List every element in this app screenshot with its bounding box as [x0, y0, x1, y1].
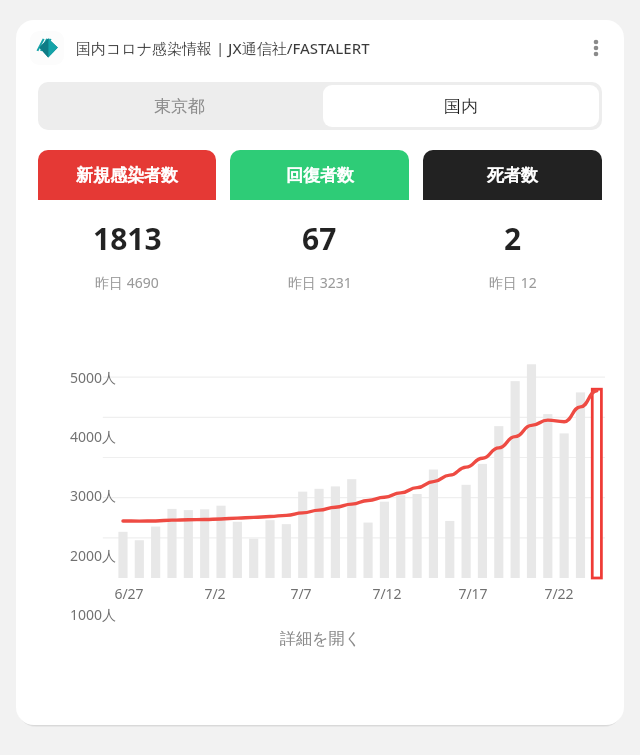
staticText: 東京都 — [154, 96, 205, 117]
staticText: 死者数 — [487, 165, 538, 186]
staticText: 3000人 — [44, 486, 116, 505]
staticText: 昨日 3231 — [288, 273, 352, 292]
staticText: 67 — [302, 218, 337, 259]
staticText: 国内コロナ感染情報 | JX通信社/FASTALERT — [76, 38, 370, 58]
staticText: 7/7 — [265, 584, 337, 603]
staticText: 1813 — [93, 218, 162, 259]
staticText: 新規感染者数 — [76, 165, 178, 186]
staticText: 昨日 12 — [489, 273, 537, 292]
button[interactable]: More options — [576, 28, 616, 68]
staticText: 7/22 — [523, 584, 595, 603]
staticText: 昨日 4690 — [95, 273, 159, 292]
staticText: 1000人 — [44, 605, 116, 624]
staticText: 回復者数 — [286, 165, 354, 186]
button[interactable]: 国内 — [323, 85, 599, 127]
staticText: 6/27 — [93, 584, 165, 603]
staticText: 国内 — [444, 96, 478, 117]
button[interactable]: 死者数 — [423, 150, 602, 295]
staticText: 5000人 — [44, 368, 116, 387]
staticText: 7/17 — [437, 584, 509, 603]
staticText: 7/2 — [179, 584, 251, 603]
staticText: 7/12 — [351, 584, 423, 603]
button[interactable]: 東京都 — [38, 82, 320, 130]
button[interactable]: 新規感染者数 — [38, 150, 216, 295]
staticText: 4000人 — [44, 427, 116, 446]
button[interactable]: 回復者数 — [230, 150, 409, 295]
button[interactable]: 詳細を開く — [264, 621, 377, 657]
staticText: 詳細を開く — [280, 629, 361, 649]
staticText: 2 — [504, 218, 522, 259]
staticText: 2000人 — [44, 546, 116, 565]
